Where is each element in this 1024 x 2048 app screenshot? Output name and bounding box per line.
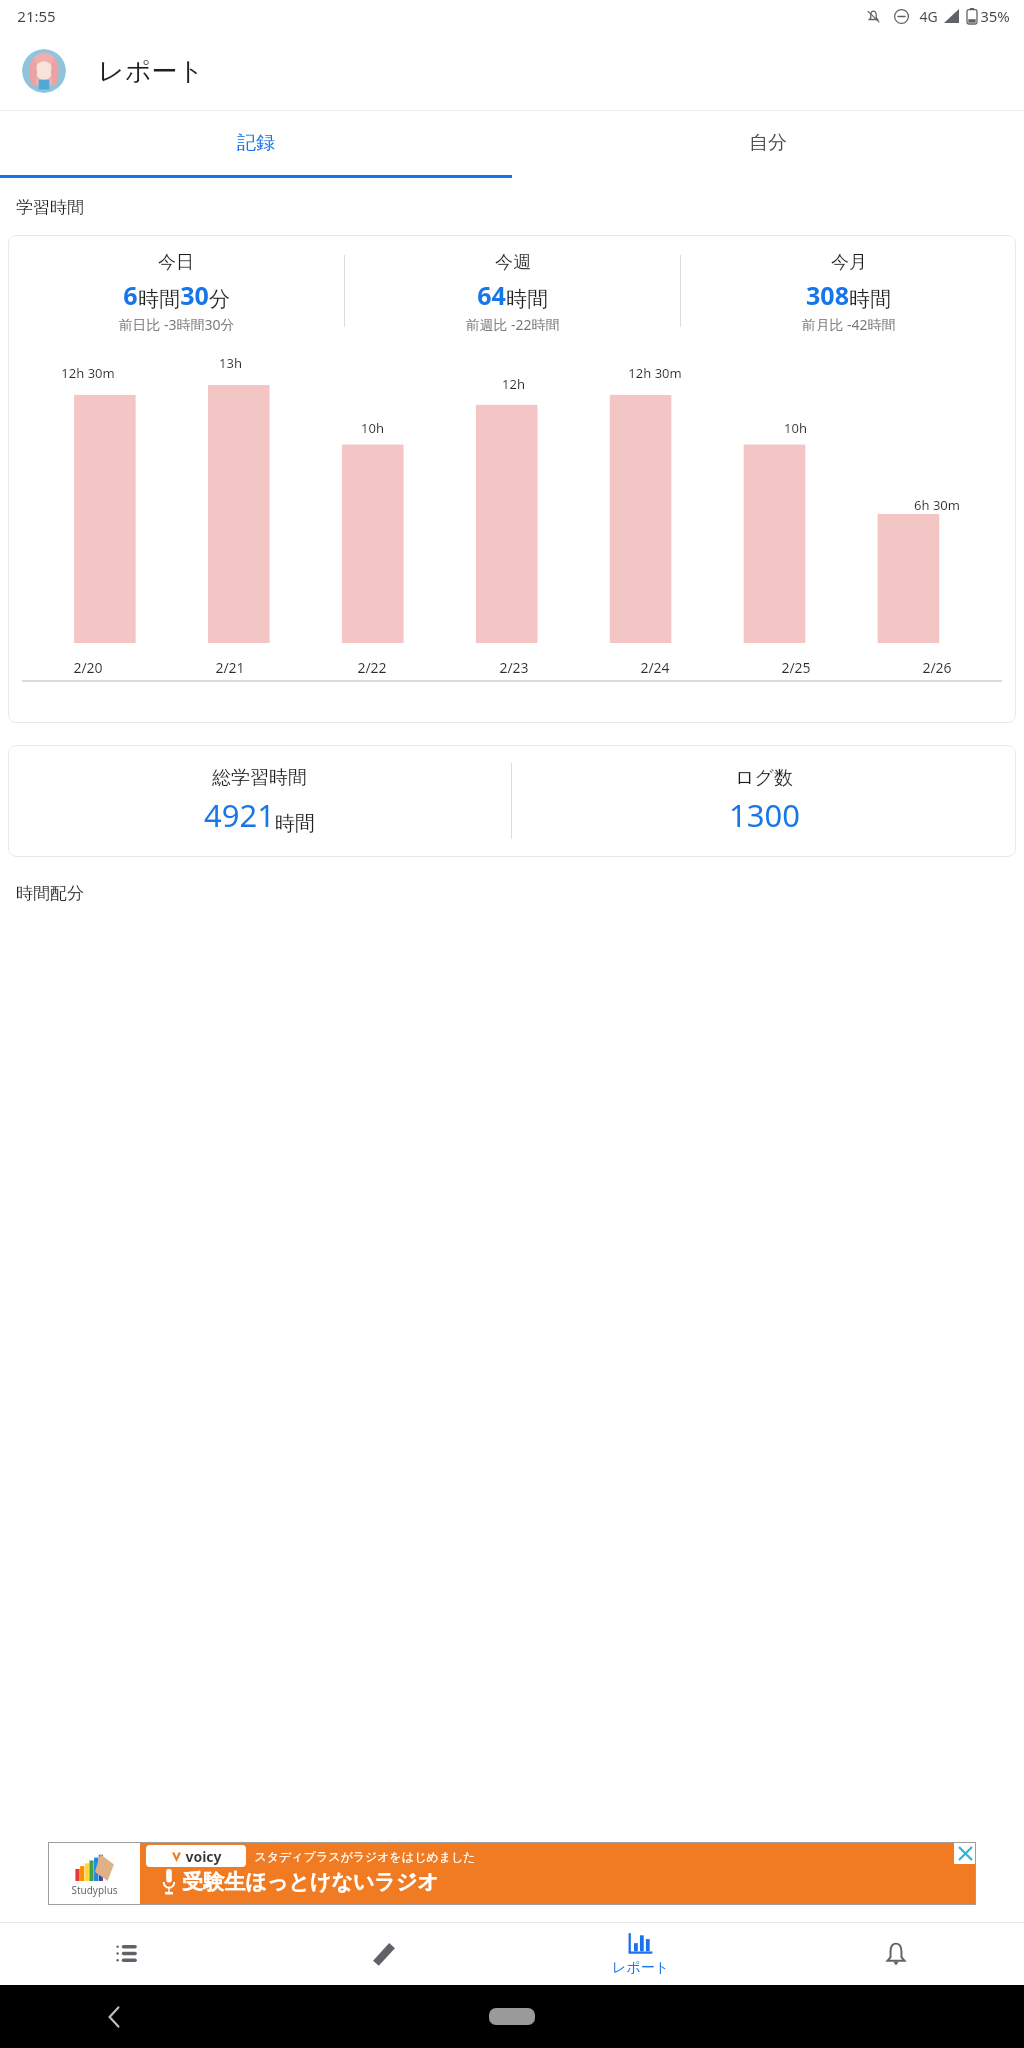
- staticText: レポート: [98, 55, 204, 88]
- staticText: 時間: [275, 811, 315, 836]
- staticText: 12h 30m: [61, 364, 115, 382]
- button[interactable]: 記録: [0, 111, 512, 175]
- button[interactable]: Studyplus: [48, 1842, 976, 1905]
- staticText: 12h: [502, 375, 525, 393]
- staticText: 今日: [158, 251, 194, 274]
- staticText: 前月比 -42時間: [801, 315, 896, 331]
- staticText: 2/21: [215, 658, 245, 677]
- staticText: 時間: [849, 286, 891, 312]
- staticText: 前週比 -22時間: [465, 315, 560, 331]
- button[interactable]: レポート: [512, 1923, 768, 1985]
- button[interactable]: 今日: [8, 235, 1016, 723]
- staticText: 時間: [506, 286, 548, 312]
- button[interactable]: List: [0, 1923, 256, 1985]
- staticText: voicy: [185, 1847, 222, 1866]
- staticText: 2/26: [922, 658, 952, 677]
- staticText: 今月: [831, 251, 867, 274]
- button[interactable]: Close ad: [954, 1842, 976, 1864]
- staticText: 64: [477, 278, 506, 312]
- staticText: 前日比 -3時間30分: [118, 315, 235, 331]
- staticText: スタディプラスがラジオをはじめました: [254, 1849, 476, 1864]
- staticText: Studyplus: [71, 1883, 118, 1897]
- staticText: 分: [209, 286, 230, 312]
- staticText: 総学習時間: [212, 766, 307, 790]
- staticText: レポート: [612, 1959, 669, 1977]
- button[interactable]: Back: [104, 2002, 124, 2032]
- staticText: 1300: [729, 794, 800, 836]
- staticText: 35%: [980, 6, 1010, 26]
- staticText: 30: [180, 278, 209, 312]
- button[interactable]: Notifications: [768, 1923, 1024, 1985]
- staticText: 6h 30m: [914, 496, 960, 514]
- staticText: 13h: [219, 354, 242, 372]
- button[interactable]: 自分: [512, 111, 1024, 175]
- staticText: 308: [806, 278, 849, 312]
- staticText: 2/22: [357, 658, 387, 677]
- button[interactable]: Profile: [22, 49, 66, 93]
- staticText: 6: [123, 278, 138, 312]
- staticText: 学習時間: [16, 197, 84, 218]
- staticText: 受験生ほっとけないラジオ: [182, 1869, 439, 1895]
- staticText: 2/20: [73, 658, 103, 677]
- staticText: 4G: [919, 7, 938, 26]
- staticText: 今週: [495, 251, 531, 274]
- staticText: 12h 30m: [628, 364, 682, 382]
- staticText: 2/24: [640, 658, 670, 677]
- staticText: 10h: [361, 419, 384, 437]
- staticText: 時間: [138, 286, 180, 312]
- staticText: 4921: [204, 794, 275, 836]
- button[interactable]: 総学習時間: [8, 745, 1016, 857]
- staticText: 2/23: [499, 658, 529, 677]
- staticText: 記録: [237, 131, 275, 155]
- staticText: 時間配分: [16, 883, 84, 904]
- staticText: 自分: [749, 131, 787, 155]
- button[interactable]: Home: [489, 2008, 535, 2025]
- button[interactable]: Record: [256, 1923, 512, 1985]
- staticText: 21:55: [17, 6, 56, 26]
- staticText: ログ数: [735, 766, 793, 790]
- staticText: 10h: [784, 419, 807, 437]
- staticText: 2/25: [781, 658, 811, 677]
